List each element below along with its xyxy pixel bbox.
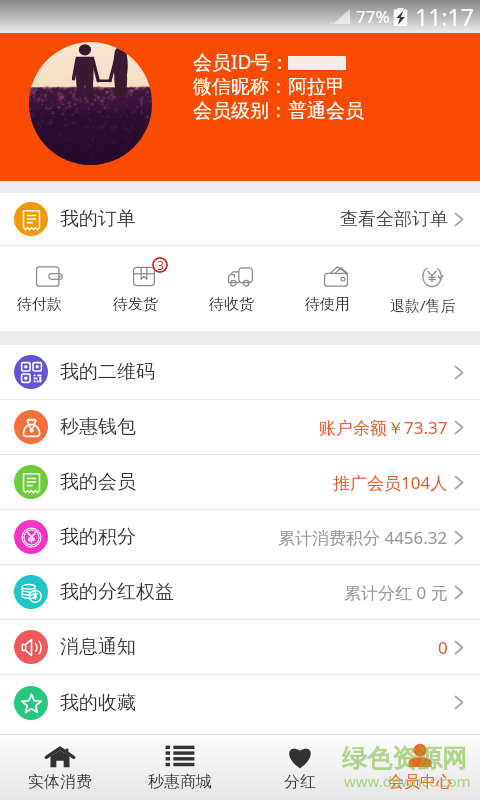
staticText: 待发货 bbox=[113, 295, 158, 314]
button[interactable]: 退款/售后 bbox=[384, 246, 480, 331]
staticText: 0 bbox=[438, 636, 448, 659]
staticText: 账户余额￥73.37 bbox=[319, 416, 448, 439]
staticText: 查看全部订单 bbox=[340, 208, 448, 231]
staticText: 累计分红 0 元 bbox=[344, 581, 448, 604]
button[interactable]: 我的订单 bbox=[0, 193, 480, 245]
staticText: 分红 bbox=[284, 772, 316, 792]
staticText: 消息通知 bbox=[60, 635, 136, 659]
staticText: 我的分红权益 bbox=[60, 580, 174, 604]
staticText: 我的会员 bbox=[60, 470, 136, 494]
button[interactable]: 我的收藏 bbox=[0, 675, 480, 730]
staticText: 推广会员104人 bbox=[333, 471, 448, 494]
staticText: 绿色资源网 bbox=[342, 743, 467, 774]
button[interactable]: 我的积分 bbox=[0, 510, 480, 564]
staticText: 我的二维码 bbox=[60, 360, 155, 384]
staticText: 我的积分 bbox=[60, 525, 136, 549]
staticText: 实体消费 bbox=[28, 772, 92, 792]
staticText: 待付款 bbox=[17, 295, 62, 314]
button[interactable]: 秒惠钱包 bbox=[0, 400, 480, 454]
button[interactable]: 我的二维码 bbox=[0, 345, 480, 399]
button[interactable]: 分红 bbox=[240, 735, 360, 800]
button[interactable]: 待收货 bbox=[192, 246, 288, 331]
staticText: 11:17 bbox=[415, 1, 474, 32]
staticText: 3 bbox=[157, 257, 164, 273]
button[interactable]: 3 bbox=[96, 246, 192, 331]
staticText: 会员ID号： bbox=[193, 49, 290, 75]
staticText: 微信昵称：阿拉甲 bbox=[193, 75, 345, 99]
button[interactable]: Avatar bbox=[29, 42, 152, 165]
button[interactable]: 会员中心 bbox=[360, 735, 480, 800]
staticText: 会员级别：普通会员 bbox=[193, 99, 364, 123]
staticText: 秒惠钱包 bbox=[60, 415, 136, 439]
button[interactable]: 秒惠商城 bbox=[120, 735, 240, 800]
staticText: 会员中心 bbox=[388, 772, 452, 792]
staticText: 待收货 bbox=[209, 295, 254, 314]
staticText: 待使用 bbox=[305, 295, 350, 314]
staticText: 累计消费积分 4456.32 bbox=[278, 526, 448, 549]
staticText: 退款/售后 bbox=[390, 295, 456, 315]
button[interactable]: 待使用 bbox=[288, 246, 384, 331]
staticText: 我的收藏 bbox=[60, 691, 136, 715]
button[interactable]: 我的会员 bbox=[0, 455, 480, 509]
button[interactable]: 我的分红权益 bbox=[0, 565, 480, 619]
button[interactable]: 消息通知 bbox=[0, 620, 480, 674]
staticText: 77% bbox=[356, 5, 390, 28]
staticText: 我的订单 bbox=[60, 207, 136, 231]
staticText: www.downcc.com bbox=[344, 771, 471, 791]
button[interactable]: 实体消费 bbox=[0, 735, 120, 800]
staticText: 秒惠商城 bbox=[148, 772, 212, 792]
button[interactable]: 待付款 bbox=[0, 246, 96, 331]
